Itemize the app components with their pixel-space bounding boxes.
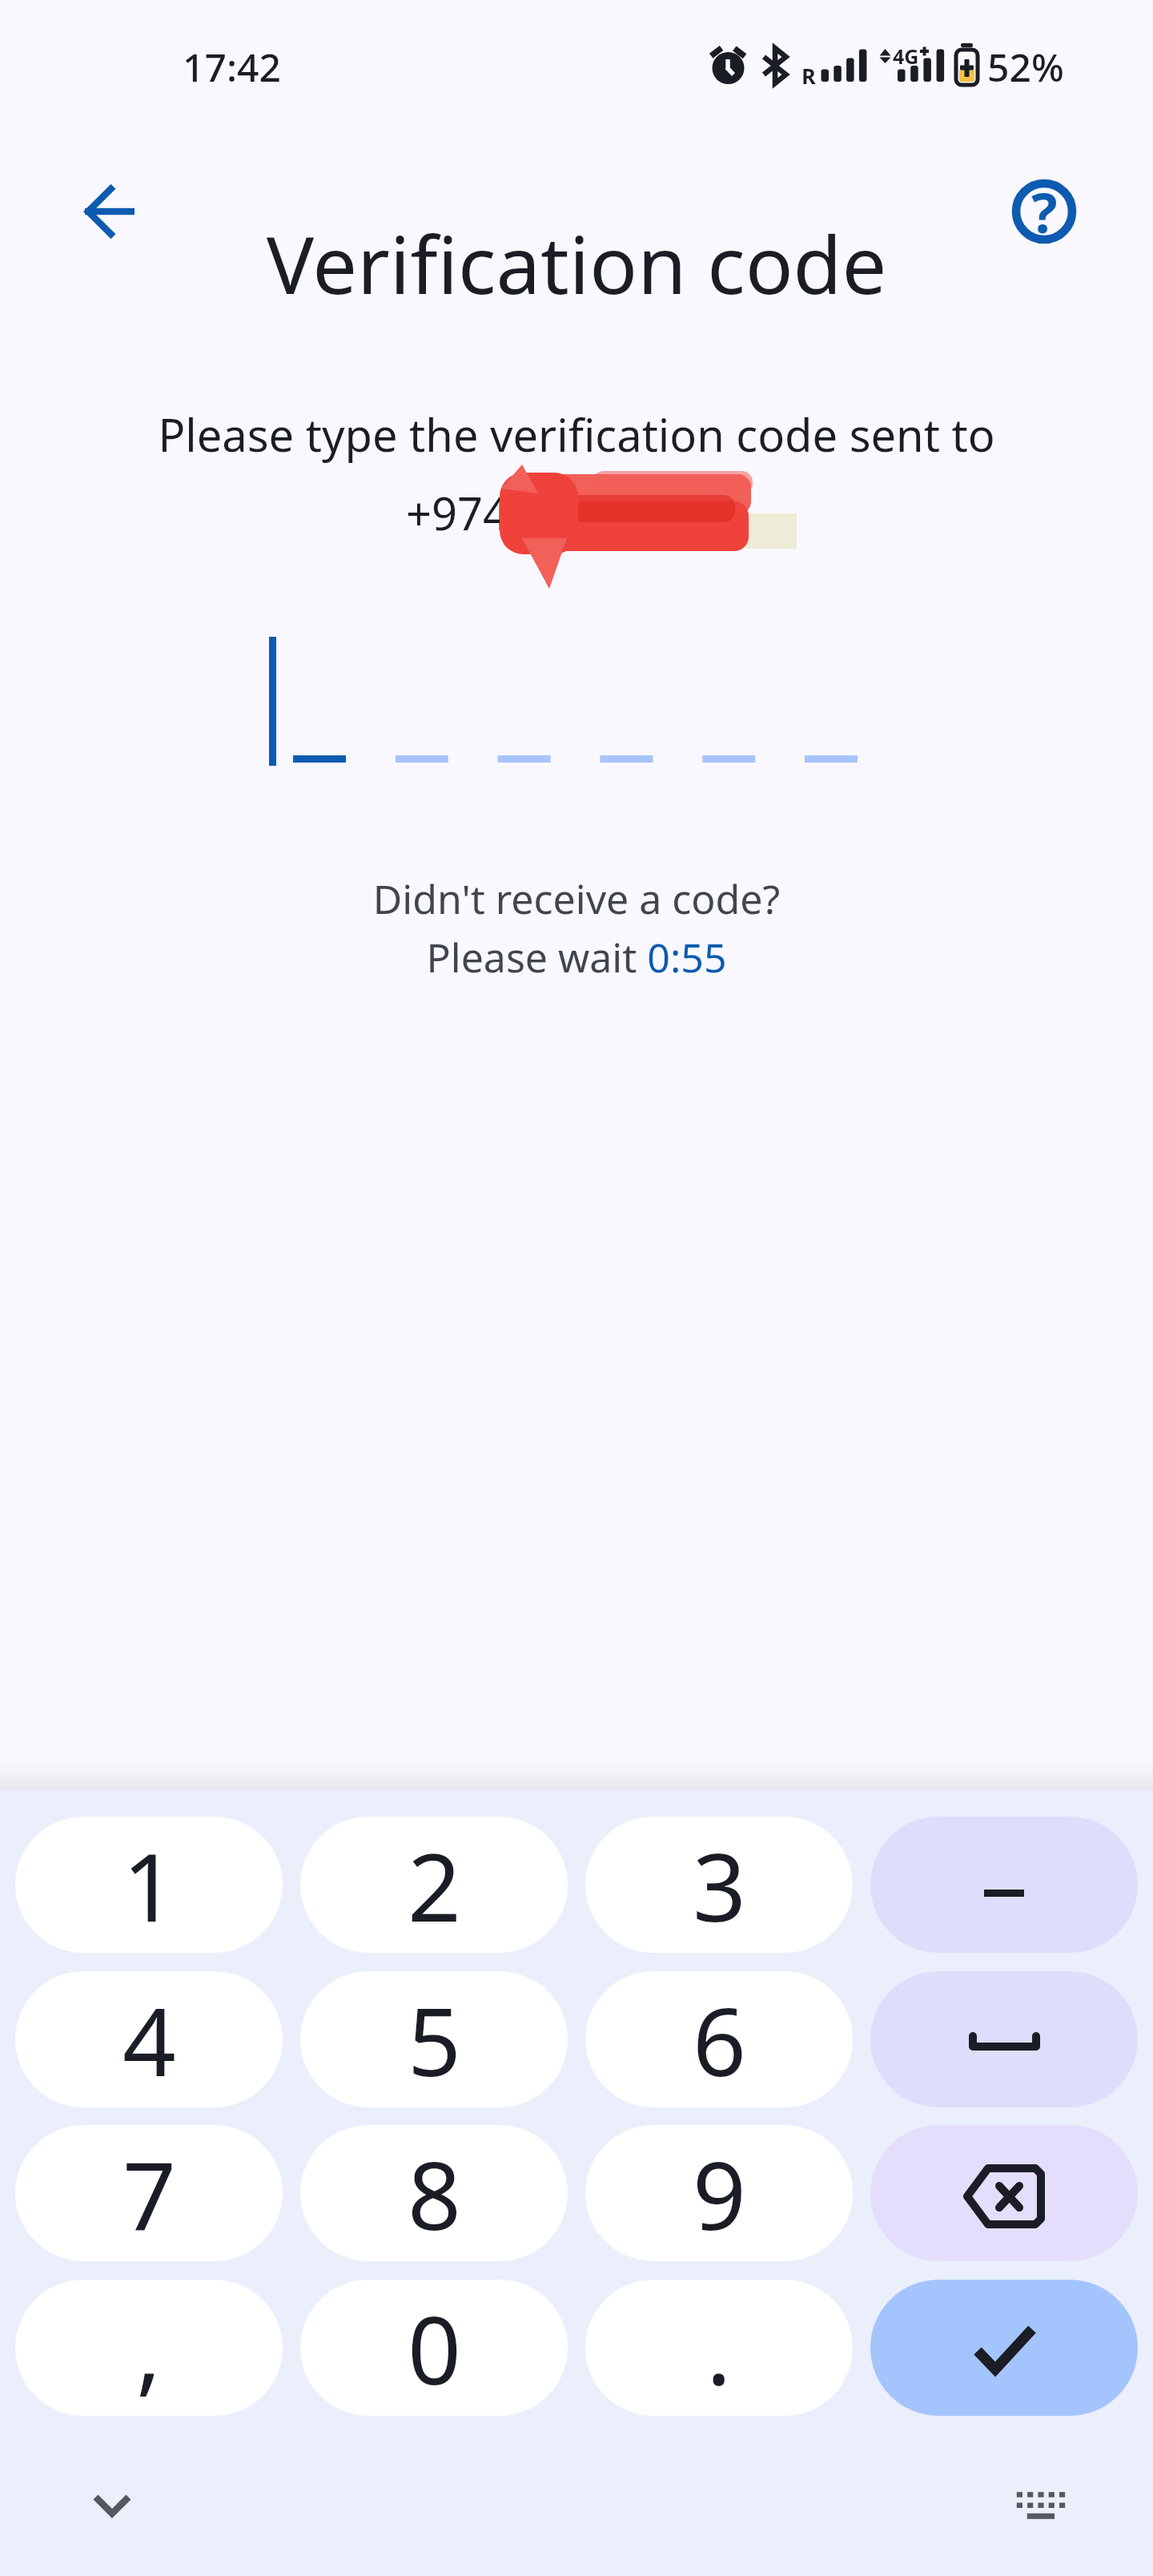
staticText: 17:42 [183, 41, 281, 93]
staticText: 8 [408, 2130, 461, 2257]
button[interactable]: 1 [15, 1817, 283, 1953]
staticText: ? [1031, 175, 1058, 249]
staticText: , [136, 2284, 162, 2412]
button[interactable]: 7 [15, 2125, 283, 2261]
staticText: 7 [123, 2130, 176, 2257]
button[interactable]: 8 [300, 2125, 568, 2261]
button[interactable]: Space [870, 1971, 1138, 2107]
button[interactable]: Back [69, 171, 149, 252]
button[interactable]: Help [1004, 171, 1084, 252]
staticText: 4G [893, 42, 919, 70]
staticText: +974 5555 5555 [406, 482, 737, 543]
staticText: R [801, 61, 816, 91]
staticText: Didn't receive a code? [0, 871, 1153, 926]
staticText: 2 [408, 1821, 461, 1949]
staticText: Please wait 0:55 [426, 930, 727, 984]
button[interactable]: Backspace [870, 2125, 1138, 2261]
button[interactable]: 5 [300, 1971, 568, 2107]
staticText: 0 [408, 2284, 461, 2412]
staticText: 3 [693, 1821, 746, 1949]
button[interactable]: Verification code input [240, 625, 897, 785]
staticText: Verification code [0, 209, 1153, 317]
staticText: 9 [693, 2130, 746, 2257]
button[interactable]: 2 [300, 1817, 568, 1953]
button[interactable]: Hide keyboard [72, 2465, 152, 2546]
staticText: Please type the verification code sent t… [0, 404, 1153, 465]
button[interactable]: Please wait 0:55 [400, 925, 753, 981]
button[interactable]: 6 [585, 1971, 853, 2107]
staticText: 4 [123, 1976, 176, 2103]
button[interactable]: 9 [585, 2125, 853, 2261]
button[interactable]: 0 [300, 2280, 568, 2416]
button[interactable]: Switch keyboard [1001, 2465, 1081, 2546]
button[interactable]: , [15, 2280, 283, 2416]
staticText: 1 [123, 1821, 176, 1949]
button[interactable]: 4 [15, 1971, 283, 2107]
button[interactable]: 3 [585, 1817, 853, 1953]
staticText: 52% [987, 41, 1064, 93]
button[interactable]: . [585, 2280, 853, 2416]
button[interactable]: Minus [870, 1817, 1138, 1953]
staticText: 6 [693, 1976, 746, 2103]
staticText: . [706, 2284, 732, 2412]
staticText: 5 [408, 1976, 461, 2103]
button[interactable]: Enter [870, 2280, 1138, 2416]
